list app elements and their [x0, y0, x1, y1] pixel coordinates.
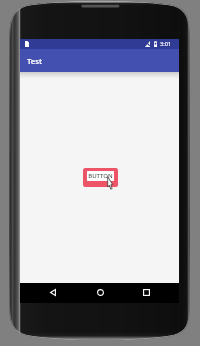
button[interactable]: Test: [20, 49, 179, 72]
button[interactable]: BUTTON: [83, 168, 118, 187]
button[interactable]: Back: [41, 282, 64, 302]
staticText: 3:01: [160, 40, 172, 48]
button[interactable]: Recents: [135, 282, 158, 302]
staticText: BUTTON: [88, 172, 113, 180]
staticText: Test: [27, 56, 43, 67]
button[interactable]: Home: [89, 282, 112, 302]
